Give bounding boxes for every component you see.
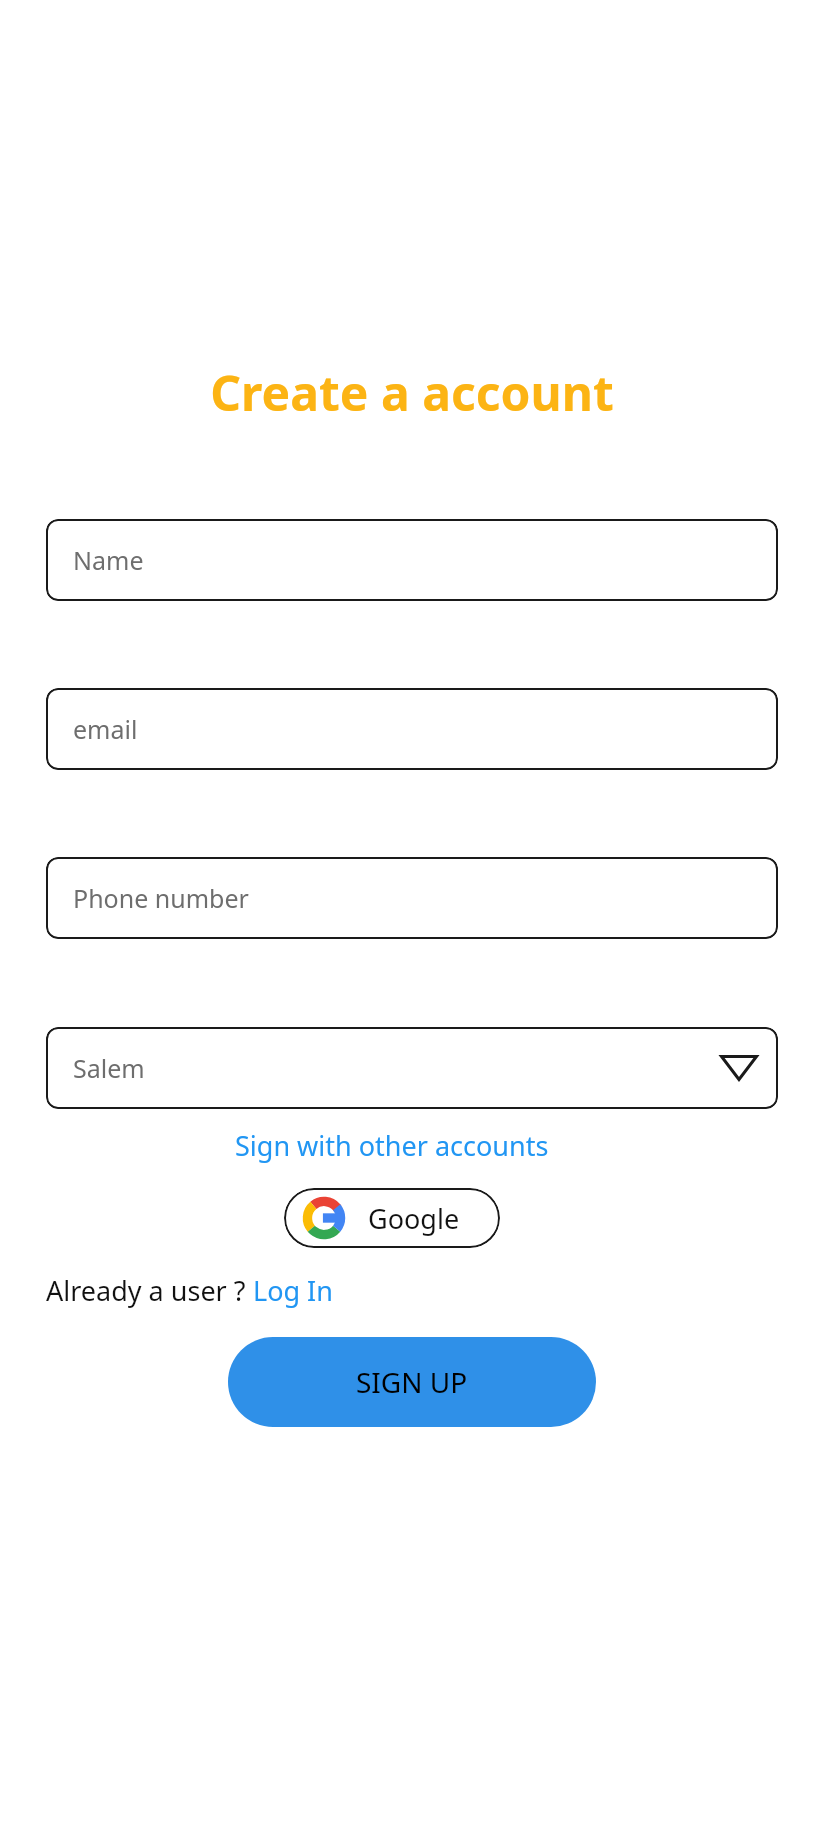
staticText: SIGN UP xyxy=(356,1363,468,1401)
button[interactable]: Name xyxy=(46,519,778,601)
staticText: Phone number xyxy=(73,881,249,915)
button[interactable]: SIGN UP xyxy=(228,1337,596,1427)
staticText: email xyxy=(73,712,138,746)
button[interactable]: email xyxy=(46,688,778,770)
staticText: Google xyxy=(368,1200,460,1237)
staticText: Log In xyxy=(253,1272,333,1309)
staticText: Create a account xyxy=(0,360,824,425)
button[interactable]: Log In xyxy=(253,1272,333,1309)
button[interactable]: Sign with other accounts xyxy=(46,1127,738,1164)
button[interactable]: Google xyxy=(284,1188,500,1248)
staticText: Sign with other accounts xyxy=(235,1127,549,1164)
staticText: Name xyxy=(73,543,144,577)
staticText: Already a user ? xyxy=(46,1272,253,1309)
staticText: Salem xyxy=(73,1051,145,1085)
button[interactable]: Phone number xyxy=(46,857,778,939)
button[interactable]: Salem xyxy=(46,1027,778,1109)
